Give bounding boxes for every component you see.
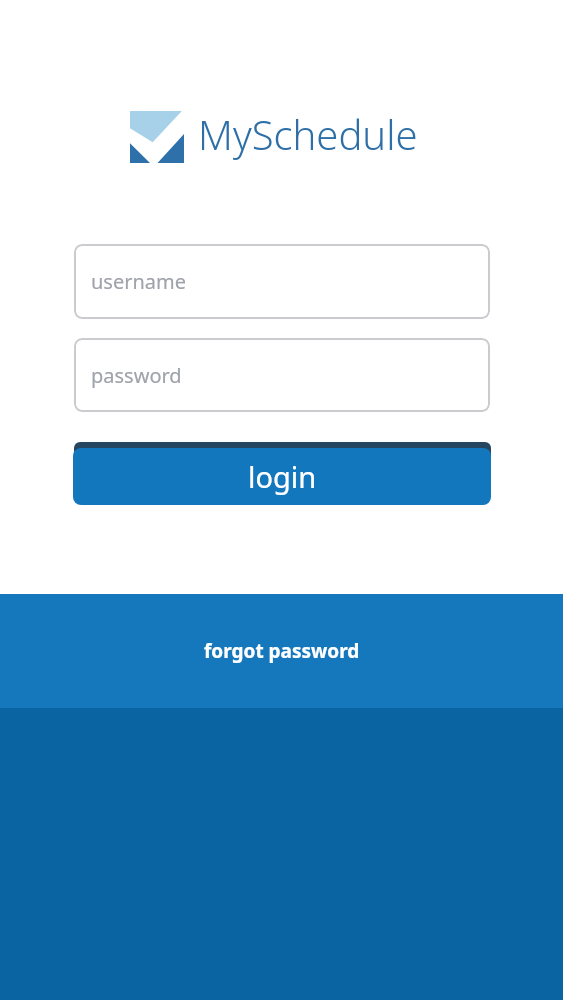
staticText: forgot password [204, 638, 360, 664]
button[interactable]: login [73, 442, 491, 505]
staticText: login [248, 457, 317, 496]
staticText: MySchedule [198, 107, 418, 161]
staticText: username [91, 268, 187, 295]
button[interactable]: forgot password [0, 594, 563, 708]
staticText: password [91, 362, 182, 389]
button[interactable]: password [74, 338, 490, 412]
button[interactable]: username [74, 244, 490, 319]
